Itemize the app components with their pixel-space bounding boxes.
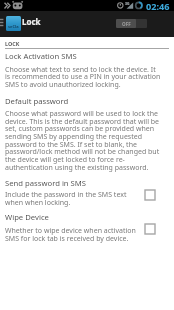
staticText: Default password <box>5 96 69 106</box>
staticText: Wipe Device <box>5 212 49 222</box>
button[interactable] <box>0 50 174 88</box>
staticText: Choose what password will be used to loc… <box>5 109 158 119</box>
button[interactable]: OFF <box>116 19 147 28</box>
staticText: 02:46 <box>146 0 170 11</box>
staticText: Lock <box>22 16 41 27</box>
staticText: password to the SMS. If set to blank, th… <box>5 140 137 150</box>
staticText: OFF <box>122 21 131 27</box>
staticText: seCla <box>8 24 19 29</box>
button[interactable] <box>145 190 155 200</box>
staticText: 3G <box>125 1 130 6</box>
staticText: sending SMS by appending the requested <box>5 132 143 142</box>
staticText: is recommended to use a PIN in your acti… <box>5 72 161 82</box>
staticText: Include the password in the SMS text <box>5 190 127 200</box>
staticText: SMS for lock tab is received by device. <box>5 234 129 244</box>
staticText: password/lock method will not be changed… <box>5 147 160 157</box>
staticText: LOCK <box>5 40 20 47</box>
staticText: authentication using the existing passwo… <box>5 163 149 173</box>
staticText: when when locking. <box>5 198 71 208</box>
button[interactable] <box>0 210 174 242</box>
button[interactable] <box>0 92 174 172</box>
staticText: the device will get locked to force re- <box>5 155 125 165</box>
button[interactable] <box>0 175 174 207</box>
staticText: Choose what text to send to lock the dev… <box>5 65 156 75</box>
button[interactable]: seCla <box>6 16 21 31</box>
button[interactable] <box>145 224 155 234</box>
staticText: SMS to avoid unauthorized locking. <box>5 80 121 90</box>
staticText: Whether to wipe device when activation <box>5 226 136 236</box>
staticText: device. This is the default password tha… <box>5 117 160 127</box>
staticText: set, custom passwords can be provided wh… <box>5 124 155 134</box>
staticText: Lock Activation SMS <box>5 51 77 61</box>
staticText: Send password in SMS <box>5 178 87 188</box>
